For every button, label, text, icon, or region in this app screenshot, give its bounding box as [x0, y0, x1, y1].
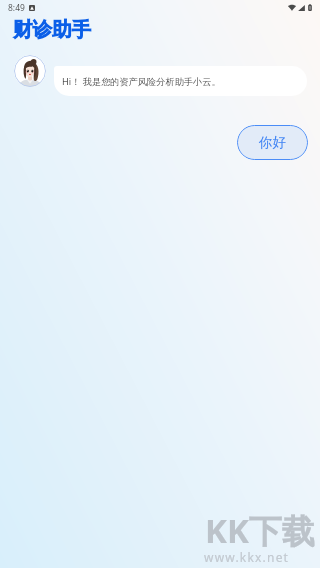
staticText: 你好: [259, 134, 286, 151]
button[interactable]: 助手头像: [14, 55, 46, 87]
staticText: KK下载: [205, 508, 315, 553]
button[interactable]: 你好: [237, 125, 308, 160]
button[interactable]: Hi！ 我是您的资产风险分析助手小云。: [54, 66, 307, 96]
staticText: 8:49: [8, 2, 25, 14]
staticText: www.kkx.net: [204, 549, 290, 565]
staticText: 财诊助手: [13, 17, 91, 42]
staticText: Hi！ 我是您的资产风险分析助手小云。: [62, 75, 221, 88]
